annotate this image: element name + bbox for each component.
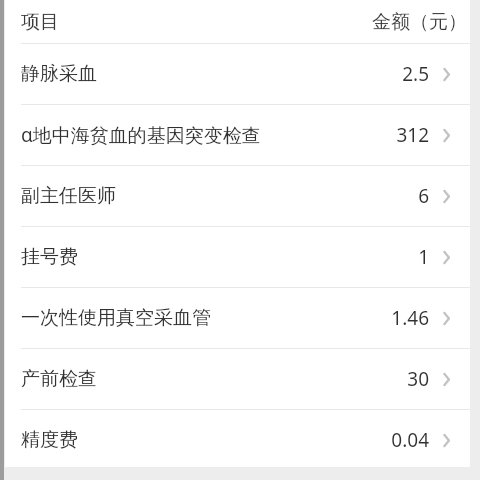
staticText: 项目 (21, 10, 59, 34)
staticText: 金额（元） (372, 10, 467, 34)
button[interactable]: 产前检查 (5, 349, 470, 409)
button[interactable]: 副主任医师 (5, 166, 470, 226)
staticText: 2.5 (402, 61, 429, 87)
staticText: 0.04 (391, 427, 429, 453)
staticText: 312 (396, 122, 429, 148)
button[interactable]: 一次性使用真空采血管 (5, 288, 470, 348)
button[interactable]: 精度费 (5, 410, 470, 470)
button[interactable]: 挂号费 (5, 227, 470, 287)
staticText: 静脉采血 (21, 62, 402, 86)
staticText: 6 (418, 183, 429, 209)
other: 查看详情 (441, 431, 452, 450)
staticText: 30 (407, 366, 429, 392)
other: 查看详情 (441, 126, 452, 145)
staticText: 一次性使用真空采血管 (21, 306, 391, 330)
other: 查看详情 (441, 187, 452, 206)
button[interactable]: α地中海贫血的基因突变检查 (5, 105, 470, 165)
staticText: 1.46 (391, 305, 429, 331)
other: 查看详情 (441, 65, 452, 84)
staticText: 副主任医师 (21, 184, 418, 208)
staticText: α地中海贫血的基因突变检查 (21, 122, 396, 148)
staticText: 挂号费 (21, 245, 418, 269)
staticText: 1 (418, 244, 429, 270)
button[interactable]: 静脉采血 (5, 44, 470, 104)
other: 查看详情 (441, 309, 452, 328)
staticText: 精度费 (21, 428, 391, 452)
staticText: 产前检查 (21, 367, 407, 391)
other: 查看详情 (441, 248, 452, 267)
other: 查看详情 (441, 370, 452, 389)
